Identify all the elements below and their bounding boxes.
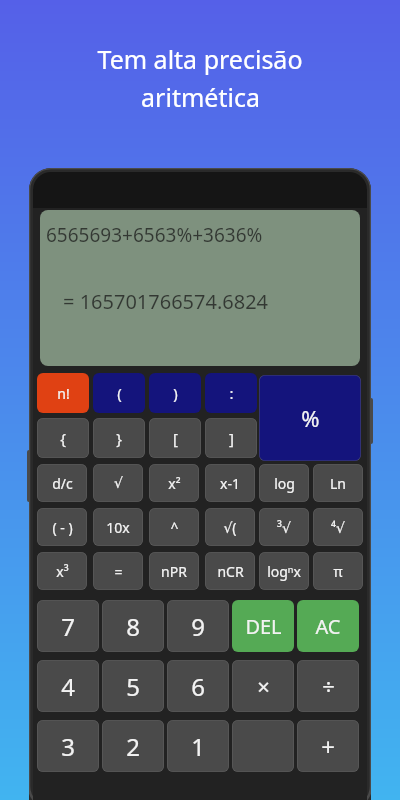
button[interactable]: Power <box>369 398 373 444</box>
button[interactable]: ⁴√ <box>313 508 363 546</box>
button[interactable]: 5 <box>102 660 164 712</box>
staticText: x-1 <box>220 474 240 493</box>
button[interactable]: DEL <box>232 600 294 652</box>
staticText: AC <box>315 613 341 640</box>
button[interactable]: } <box>93 418 145 458</box>
button[interactable]: nPR <box>149 552 199 590</box>
button[interactable]: √ <box>93 464 143 502</box>
staticText: ( <box>117 383 122 403</box>
button[interactable]: ( <box>93 373 145 413</box>
staticText: √( <box>223 518 237 537</box>
button[interactable]: √( <box>205 508 255 546</box>
button[interactable]: ] <box>205 418 257 458</box>
staticText: 6565693+6563%+3636% <box>46 222 263 248</box>
button[interactable]: ÷ <box>297 660 359 712</box>
staticText: √ <box>114 475 123 491</box>
button[interactable]: d/c <box>37 464 87 502</box>
button[interactable]: + <box>297 720 359 772</box>
button[interactable]: 10x <box>93 508 143 546</box>
staticText: 6 <box>191 670 205 703</box>
staticText: ÷ <box>322 671 335 701</box>
button[interactable]: ( - ) <box>37 508 87 546</box>
staticText: nCR <box>217 562 244 581</box>
button[interactable]: AC <box>297 600 359 652</box>
button[interactable]: x-1 <box>205 464 255 502</box>
button[interactable]: 7 <box>37 600 99 652</box>
button[interactable]: logⁿx <box>259 552 309 590</box>
staticText: π <box>333 562 343 581</box>
button[interactable]: x² <box>149 464 199 502</box>
button[interactable]: × <box>232 660 294 712</box>
button[interactable]: Volume <box>27 450 31 502</box>
staticText: + <box>321 730 335 763</box>
button[interactable]: 8 <box>102 600 164 652</box>
staticText: n! <box>57 384 70 403</box>
button[interactable]: 6 <box>167 660 229 712</box>
staticText: [ <box>173 428 178 448</box>
staticText: = 165701766574.6824 <box>63 288 269 315</box>
button[interactable]: π <box>313 552 363 590</box>
staticText: : <box>229 383 234 403</box>
button[interactable]: x³ <box>37 552 87 590</box>
button[interactable]: ^ <box>149 508 199 546</box>
staticText: 10x <box>106 518 130 537</box>
button[interactable]: 1 <box>167 720 229 772</box>
staticText: nPR <box>161 562 187 581</box>
staticText: 2 <box>126 730 140 763</box>
staticText: = <box>114 562 123 581</box>
staticText: Ln <box>330 474 346 493</box>
button[interactable]: 4 <box>37 660 99 712</box>
staticText: 1 <box>191 730 205 763</box>
staticText: aritmética <box>141 80 260 114</box>
staticText: { <box>60 428 66 448</box>
staticText: d/c <box>52 474 73 493</box>
button[interactable]: = <box>93 552 143 590</box>
button[interactable]: n! <box>37 373 89 413</box>
staticText: % <box>301 403 320 433</box>
button[interactable]: : <box>205 373 257 413</box>
button[interactable]: ³√ <box>259 508 309 546</box>
staticText: 4 <box>61 670 75 703</box>
button[interactable]: ) <box>149 373 201 413</box>
staticText: log <box>274 474 295 493</box>
button[interactable]: Ln <box>313 464 363 502</box>
button[interactable]: nCR <box>205 552 255 590</box>
button[interactable] <box>232 720 294 772</box>
staticText: 7 <box>61 610 75 643</box>
staticText: ⁴√ <box>331 518 345 537</box>
staticText: ) <box>173 383 178 403</box>
button[interactable]: [ <box>149 418 201 458</box>
button[interactable]: 2 <box>102 720 164 772</box>
staticText: ( - ) <box>52 518 73 537</box>
button[interactable]: 6565693+6563%+3636% <box>40 210 360 366</box>
staticText: 3 <box>61 730 75 763</box>
button[interactable]: log <box>259 464 309 502</box>
staticText: x² <box>168 474 181 493</box>
staticText: ^ <box>170 518 179 537</box>
staticText: ³√ <box>277 518 291 537</box>
staticText: logⁿx <box>267 562 301 581</box>
staticText: 8 <box>126 610 140 643</box>
staticText: } <box>116 428 122 448</box>
staticText: ] <box>229 428 234 448</box>
button[interactable]: { <box>37 418 89 458</box>
button[interactable]: % <box>259 375 361 461</box>
staticText: Tem alta precisão <box>97 42 303 76</box>
button[interactable]: 9 <box>167 600 229 652</box>
staticText: 5 <box>126 670 140 703</box>
staticText: x³ <box>56 562 69 581</box>
staticText: 9 <box>191 610 205 643</box>
button[interactable]: 3 <box>37 720 99 772</box>
staticText: × <box>257 671 270 701</box>
staticText: DEL <box>245 613 282 640</box>
